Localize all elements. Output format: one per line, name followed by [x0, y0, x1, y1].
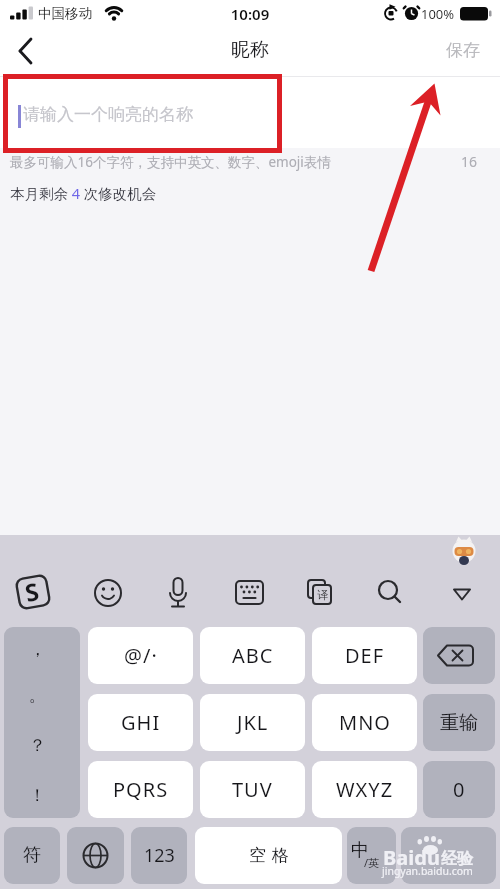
- staticText: 。: [29, 685, 46, 706]
- button[interactable]: [88, 573, 128, 613]
- button[interactable]: [13, 573, 53, 613]
- button[interactable]: 请输入一个响亮的名称: [0, 77, 500, 148]
- staticText: 16: [461, 152, 478, 171]
- button[interactable]: 123: [131, 827, 187, 884]
- button[interactable]: [401, 827, 496, 884]
- button[interactable]: TUV: [200, 761, 305, 818]
- button[interactable]: 符: [4, 827, 60, 884]
- button[interactable]: 0: [423, 761, 495, 818]
- button[interactable]: [158, 573, 198, 613]
- button[interactable]: JKL: [200, 694, 305, 751]
- staticText: S: [22, 574, 42, 609]
- staticText: WXYZ: [336, 776, 394, 803]
- button[interactable]: [423, 627, 495, 684]
- staticText: @/·: [124, 642, 158, 669]
- staticText: 123: [144, 843, 175, 868]
- button[interactable]: WXYZ: [312, 761, 417, 818]
- button[interactable]: [8, 32, 48, 72]
- staticText: 经验: [441, 849, 473, 869]
- staticText: 昵称: [0, 38, 500, 62]
- staticText: 10:09: [0, 4, 500, 24]
- staticText: Baidu: [383, 844, 440, 871]
- button[interactable]: [300, 573, 340, 613]
- button[interactable]: 保存: [435, 32, 490, 68]
- staticText: jingyan.baidu.com: [382, 864, 473, 878]
- button[interactable]: [67, 827, 124, 884]
- button[interactable]: ABC: [200, 627, 305, 684]
- staticText: DEF: [345, 642, 385, 669]
- button[interactable]: [370, 573, 410, 613]
- staticText: 符: [23, 844, 41, 867]
- staticText: 重输: [440, 711, 478, 735]
- button[interactable]: 重输: [423, 694, 495, 751]
- staticText: ，: [29, 639, 46, 660]
- button[interactable]: MNO: [312, 694, 417, 751]
- staticText: JKL: [237, 709, 269, 736]
- staticText: 请输入一个响亮的名称: [23, 104, 193, 125]
- button[interactable]: GHI: [88, 694, 193, 751]
- button[interactable]: DEF: [312, 627, 417, 684]
- staticText: PQRS: [113, 776, 169, 803]
- button[interactable]: [442, 573, 482, 613]
- button[interactable]: @/·: [88, 627, 193, 684]
- staticText: 译: [317, 588, 328, 602]
- staticText: 保存: [446, 40, 480, 61]
- button[interactable]: [229, 573, 269, 613]
- staticText: ！: [29, 785, 46, 806]
- staticText: 中国移动: [38, 5, 92, 22]
- button[interactable]: 空格: [195, 827, 342, 884]
- staticText: TUV: [232, 776, 273, 803]
- button[interactable]: PQRS: [88, 761, 193, 818]
- staticText: 本月剩余 4 次修改机会: [10, 183, 157, 203]
- staticText: ABC: [232, 642, 274, 669]
- staticText: 空格: [246, 845, 292, 866]
- staticText: ？: [29, 735, 46, 756]
- staticText: 最多可输入16个字符，支持中英文、数字、emoji表情: [10, 153, 331, 171]
- staticText: /英: [364, 855, 380, 870]
- staticText: 0: [453, 776, 466, 803]
- staticText: 100%: [421, 5, 455, 23]
- button[interactable]: [4, 627, 80, 818]
- staticText: MNO: [339, 709, 391, 736]
- staticText: 中: [351, 839, 369, 862]
- button[interactable]: [347, 827, 396, 884]
- staticText: GHI: [121, 709, 161, 736]
